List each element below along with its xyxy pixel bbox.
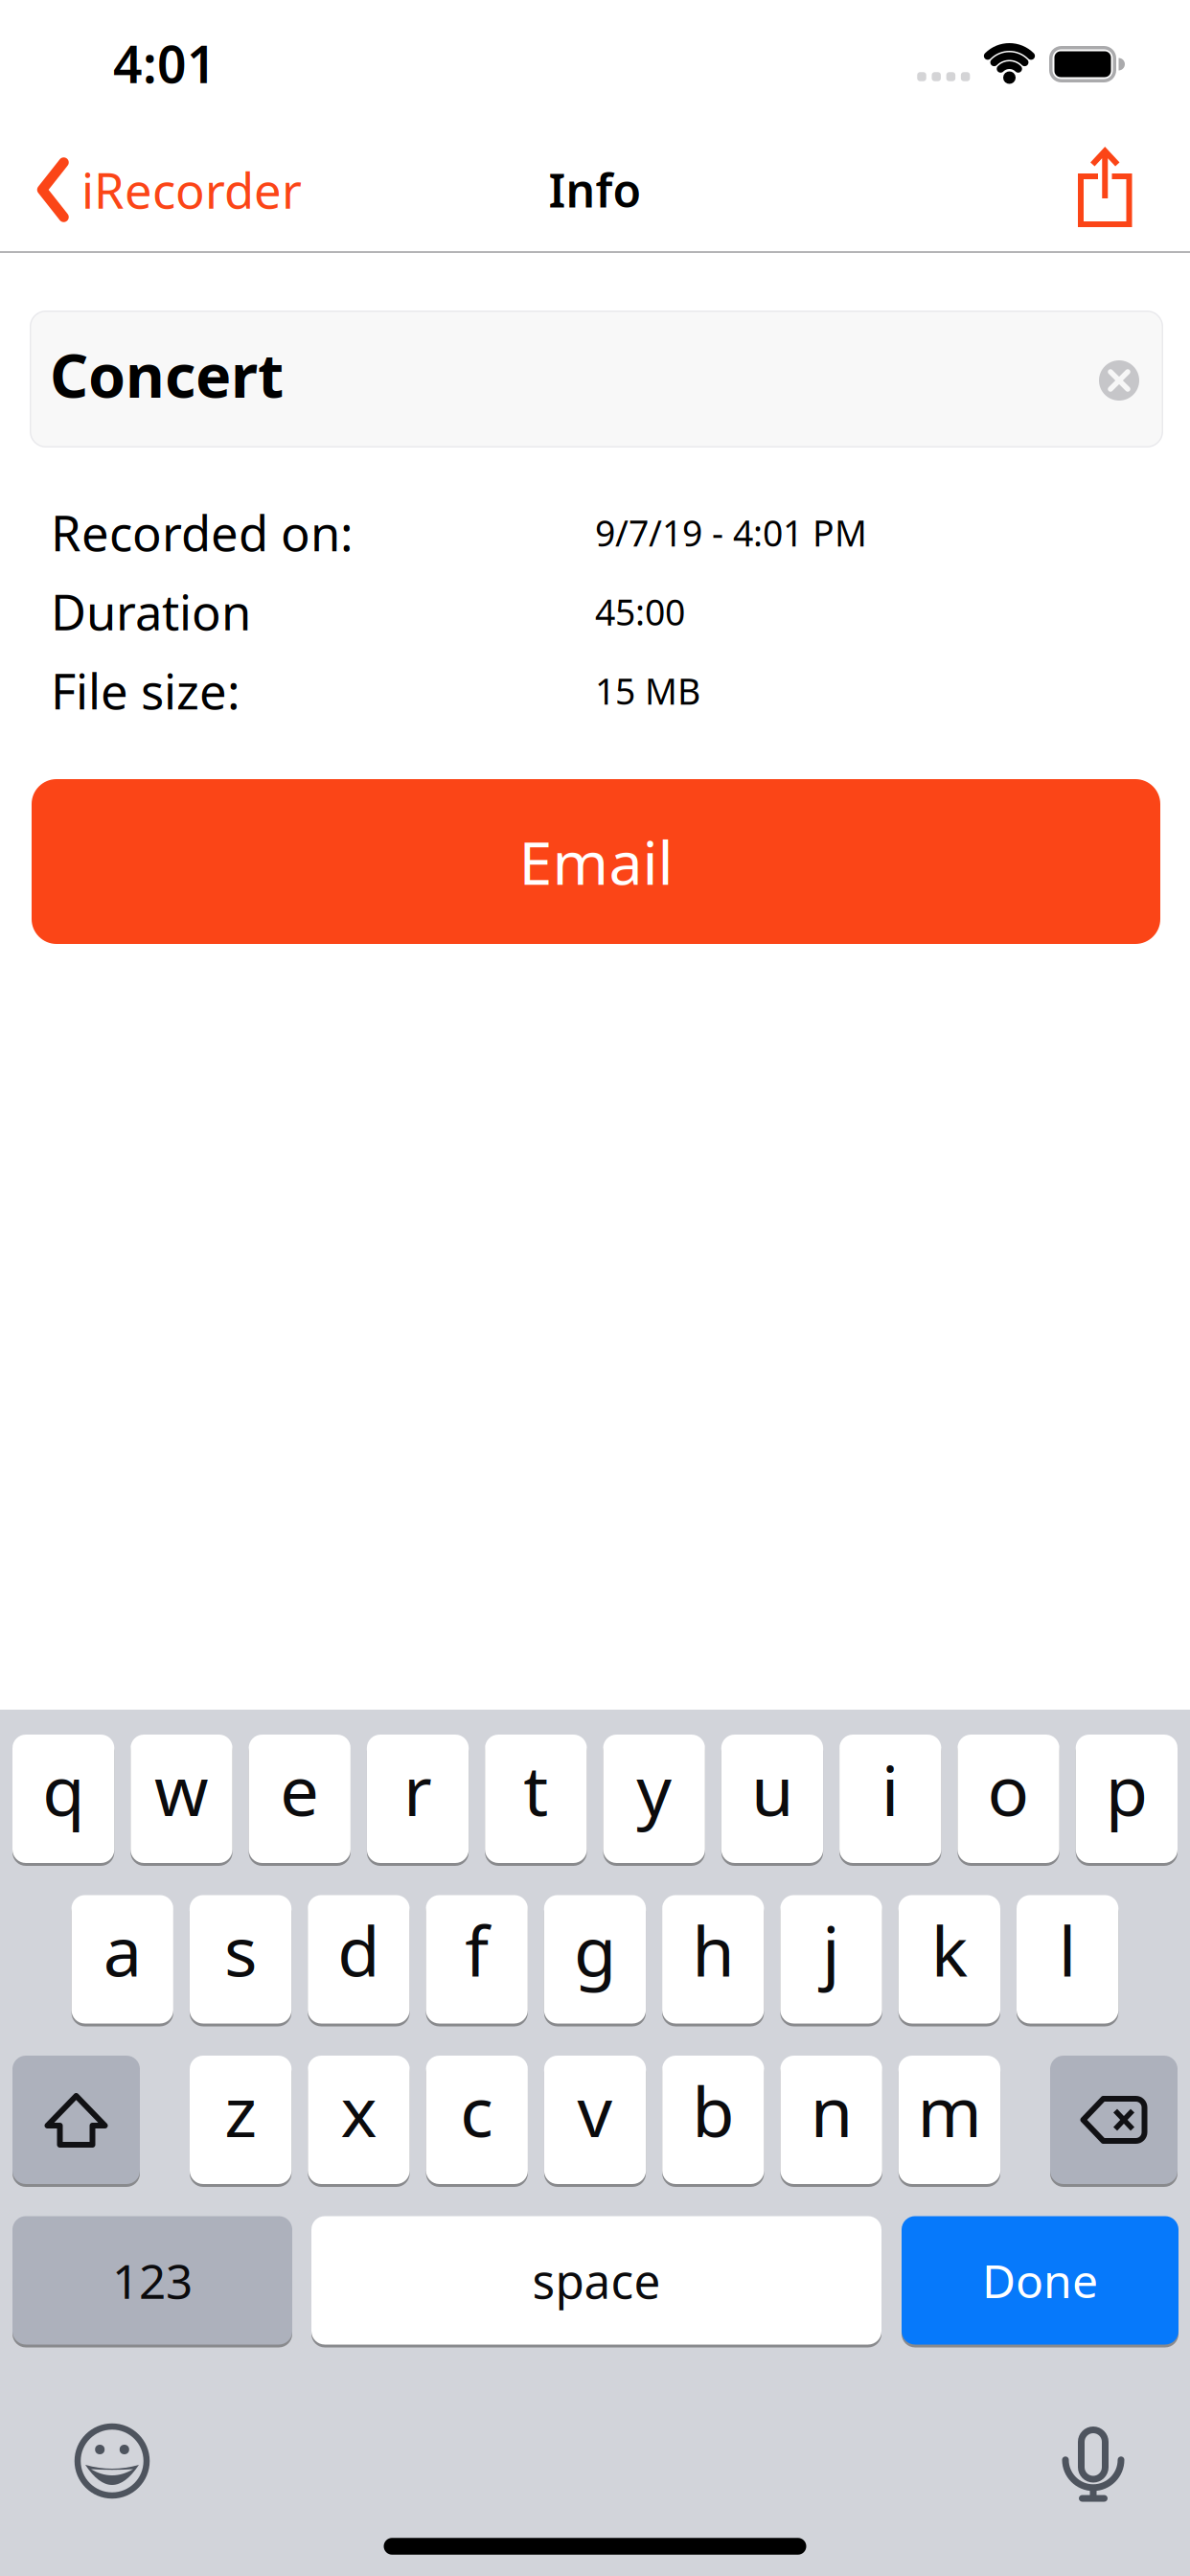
button[interactable]: Done: [902, 2216, 1179, 2345]
staticText: i: [881, 1743, 899, 1835]
staticText: m: [917, 2064, 982, 2156]
staticText: iRecorder: [81, 158, 302, 222]
button[interactable]: a: [71, 1895, 173, 2024]
staticText: 9/7/19 - 4:01 PM: [595, 509, 867, 556]
button[interactable]: Email: [32, 779, 1160, 944]
staticText: y: [636, 1743, 672, 1835]
button[interactable]: n: [780, 2056, 882, 2184]
staticText: Email: [519, 822, 673, 901]
button[interactable]: c: [426, 2056, 528, 2184]
button[interactable]: f: [426, 1895, 528, 2024]
staticText: j: [822, 1904, 840, 1996]
staticText: g: [574, 1904, 616, 1996]
button[interactable]: space: [311, 2216, 881, 2345]
button[interactable]: Shift: [12, 2056, 140, 2184]
button[interactable]: t: [485, 1735, 587, 1863]
staticText: b: [692, 2064, 734, 2156]
staticText: v: [577, 2064, 613, 2156]
button[interactable]: h: [662, 1895, 764, 2024]
button[interactable]: Delete: [1050, 2056, 1178, 2184]
staticText: File size:: [51, 658, 240, 723]
staticText: k: [931, 1904, 968, 1996]
staticText: z: [224, 2064, 257, 2156]
button[interactable]: Dictation: [1060, 2423, 1127, 2503]
button[interactable]: Clear text: [1099, 360, 1139, 401]
staticText: h: [692, 1904, 734, 1996]
staticText: r: [403, 1743, 432, 1835]
staticText: w: [154, 1743, 209, 1835]
button[interactable]: z: [190, 2056, 292, 2184]
staticText: Concert: [50, 334, 284, 414]
button[interactable]: q: [12, 1735, 114, 1863]
button[interactable]: e: [249, 1735, 351, 1863]
button[interactable]: Emoji: [71, 2420, 153, 2502]
staticText: 123: [112, 2249, 193, 2312]
staticText: c: [460, 2064, 494, 2156]
button[interactable]: 123: [12, 2216, 292, 2345]
button[interactable]: m: [899, 2056, 1000, 2184]
staticText: 15 MB: [595, 667, 700, 715]
button[interactable]: w: [131, 1735, 232, 1863]
staticText: Done: [982, 2250, 1098, 2311]
staticText: f: [465, 1904, 489, 1996]
staticText: x: [341, 2064, 377, 2156]
staticText: space: [532, 2249, 661, 2312]
staticText: o: [987, 1743, 1030, 1835]
button[interactable]: k: [898, 1895, 1000, 2024]
staticText: l: [1058, 1904, 1077, 1996]
button[interactable]: y: [603, 1735, 705, 1863]
button[interactable]: i: [839, 1735, 941, 1863]
button[interactable]: l: [1017, 1895, 1118, 2024]
staticText: n: [810, 2064, 852, 2156]
button[interactable]: x: [308, 2056, 410, 2184]
button[interactable]: s: [190, 1895, 291, 2024]
staticText: s: [224, 1904, 257, 1996]
staticText: Recorded on:: [51, 500, 354, 565]
button[interactable]: b: [662, 2056, 764, 2184]
staticText: 45:00: [595, 588, 685, 635]
staticText: Info: [549, 159, 641, 220]
staticText: 4:01: [113, 29, 217, 97]
staticText: p: [1106, 1743, 1148, 1835]
staticText: Duration: [51, 579, 251, 644]
staticText: q: [42, 1743, 85, 1835]
staticText: e: [280, 1743, 319, 1835]
staticText: d: [338, 1904, 380, 1996]
button[interactable]: j: [780, 1895, 882, 2024]
button[interactable]: p: [1076, 1735, 1178, 1863]
button[interactable]: d: [308, 1895, 410, 2024]
staticText: u: [751, 1743, 793, 1835]
button[interactable]: u: [721, 1735, 823, 1863]
button[interactable]: v: [544, 2056, 646, 2184]
staticText: a: [103, 1904, 142, 1996]
button[interactable]: g: [544, 1895, 646, 2024]
button[interactable]: o: [958, 1735, 1059, 1863]
button[interactable]: iRecorder: [37, 126, 302, 253]
button[interactable]: r: [367, 1735, 469, 1863]
staticText: t: [524, 1743, 548, 1835]
button[interactable]: Share: [1075, 148, 1134, 230]
